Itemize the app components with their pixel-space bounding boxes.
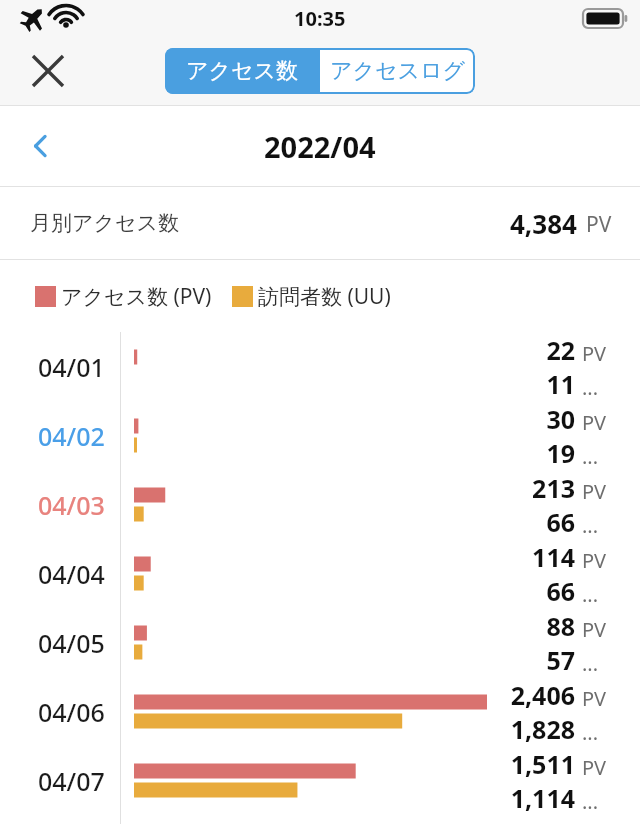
staticText: 4,384 [510,206,577,241]
staticText: 1,114 [510,781,575,815]
button[interactable]: 04/02 [0,401,640,470]
staticText: ... [582,443,599,470]
staticText: 11 [546,367,575,401]
staticText: 訪問者数 (UU) [258,282,391,311]
button[interactable]: Previous month [14,119,68,173]
staticText: アクセスログ [330,57,466,85]
staticText: PV [582,547,607,574]
staticText: ... [582,512,599,539]
staticText: 04/02 [38,419,105,453]
staticText: 2022/04 [264,127,376,166]
staticText: PV [586,210,612,239]
staticText: ... [582,374,599,401]
staticText: 04/04 [38,557,105,591]
staticText: 30 [546,402,575,436]
staticText: ... [582,581,599,608]
staticText: PV [582,754,607,781]
staticText: 1,828 [510,712,575,746]
button[interactable]: 04/05 [0,608,640,677]
staticText: 04/07 [38,764,105,798]
staticText: 10:35 [294,5,346,32]
staticText: 213 [532,471,575,505]
button[interactable]: 04/06 [0,677,640,746]
staticText: PV [582,478,607,505]
button[interactable]: 04/01 [0,332,640,401]
staticText: 88 [546,609,575,643]
staticText: 1,511 [510,747,575,781]
button[interactable]: アクセス数 [165,48,320,94]
staticText: 66 [546,574,575,608]
button[interactable]: 04/07 [0,746,640,815]
staticText: PV [582,409,607,436]
staticText: PV [582,616,607,643]
staticText: 19 [546,436,575,470]
staticText: 57 [546,643,575,677]
staticText: 04/01 [38,350,105,384]
staticText: ... [582,650,599,677]
button[interactable]: Close [21,44,75,98]
button[interactable]: アクセスログ [320,48,475,94]
staticText: 04/05 [38,626,105,660]
staticText: 22 [546,333,575,367]
staticText: ... [582,788,599,815]
staticText: 114 [532,540,575,574]
staticText: 2,406 [510,678,575,712]
staticText: 月別アクセス数 [30,210,179,236]
button[interactable]: 04/03 [0,470,640,539]
staticText: PV [582,340,607,367]
staticText: 66 [546,505,575,539]
staticText: ... [582,719,599,746]
button[interactable]: 04/04 [0,539,640,608]
staticText: PV [582,685,607,712]
staticText: アクセス数 [186,57,299,85]
staticText: アクセス数 (PV) [61,282,212,311]
staticText: 04/06 [38,695,105,729]
staticText: 04/03 [38,488,105,522]
